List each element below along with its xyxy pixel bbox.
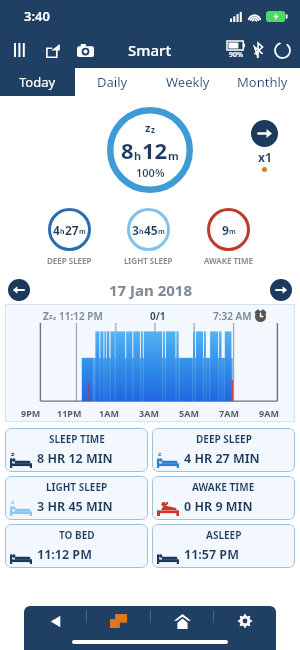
button[interactable]: Monthly: [225, 68, 300, 96]
staticText: Daily: [97, 73, 128, 91]
staticText: 11:12 PM: [37, 546, 92, 563]
staticText: 1AM: [99, 407, 119, 419]
button[interactable]: 4: [47, 208, 92, 266]
staticText: 27: [65, 222, 79, 238]
staticText: h: [134, 148, 142, 163]
staticText: z: [145, 120, 151, 135]
staticText: 9: [222, 222, 229, 238]
staticText: DEEP SLEEP: [47, 255, 92, 266]
staticText: m: [79, 227, 86, 237]
staticText: z: [49, 312, 53, 322]
button[interactable]: Today: [0, 68, 75, 96]
staticText: Z: [43, 309, 49, 323]
staticText: 3: [132, 222, 139, 238]
staticText: 12: [142, 135, 168, 165]
staticText: 4 HR 27 MIN: [184, 450, 260, 467]
staticText: Monthly: [237, 73, 288, 91]
button[interactable]: Back: [38, 610, 72, 632]
staticText: h: [139, 227, 144, 237]
staticText: 100%: [136, 165, 165, 180]
button[interactable]: AWAKE TIME: [152, 476, 295, 520]
staticText: 9AM: [259, 407, 279, 419]
button[interactable]: TO BED: [5, 524, 148, 568]
staticText: AWAKE TIME: [192, 480, 255, 494]
staticText: 3 HR 45 MIN: [37, 498, 113, 515]
staticText: 0 HR 9 MIN: [184, 498, 253, 515]
staticText: LIGHT SLEEP: [124, 255, 173, 266]
button[interactable]: Daily: [75, 68, 150, 96]
button[interactable]: Next day: [270, 279, 292, 301]
staticText: 7AM: [219, 407, 239, 419]
staticText: 8: [121, 135, 134, 165]
button[interactable]: SLEEP TIME: [5, 428, 148, 472]
staticText: LIGHT SLEEP: [46, 480, 108, 494]
button[interactable]: Menu: [8, 37, 34, 63]
staticText: 3AM: [139, 407, 159, 419]
staticText: ASLEEP: [206, 528, 242, 542]
button[interactable]: Next: [251, 120, 278, 147]
staticText: 90%: [229, 50, 244, 60]
button[interactable]: 9: [204, 208, 253, 266]
staticText: 45: [144, 222, 158, 238]
staticText: z: [151, 124, 155, 135]
staticText: TO BED: [59, 528, 95, 542]
staticText: DEEP SLEEP: [196, 432, 252, 446]
staticText: m: [229, 227, 236, 237]
staticText: 4: [53, 222, 60, 238]
staticText: Smart: [128, 40, 172, 60]
button[interactable]: Recents: [101, 610, 135, 632]
button[interactable]: ASLEEP: [152, 524, 295, 568]
button[interactable]: Home: [165, 610, 199, 632]
button[interactable]: Previous day: [8, 279, 30, 301]
staticText: m: [158, 227, 165, 237]
staticText: 11:12 PM: [59, 309, 103, 323]
button[interactable]: LIGHT SLEEP: [5, 476, 148, 520]
button[interactable]: z: [107, 107, 193, 193]
staticText: SLEEP TIME: [49, 432, 105, 446]
staticText: 3:40: [24, 7, 50, 25]
staticText: Today: [19, 73, 56, 91]
button[interactable]: 3: [124, 208, 173, 266]
staticText: 11:57 PM: [184, 546, 239, 563]
staticText: 17 Jan 2018: [109, 280, 192, 300]
staticText: h: [60, 227, 65, 237]
staticText: AWAKE TIME: [204, 255, 253, 266]
button[interactable]: Settings: [228, 610, 262, 632]
staticText: Weekly: [166, 73, 210, 91]
staticText: m: [168, 148, 179, 163]
staticText: 8 HR 12 MIN: [37, 450, 113, 467]
staticText: 11PM: [57, 407, 82, 419]
staticText: 5AM: [179, 407, 199, 419]
button[interactable]: Camera: [72, 37, 98, 63]
staticText: x1: [258, 149, 272, 165]
staticText: 7:32 AM: [213, 309, 252, 323]
staticText: z: [53, 314, 56, 322]
button[interactable]: Weekly: [150, 68, 225, 96]
staticText: 0/1: [150, 309, 166, 323]
staticText: 9PM: [21, 407, 41, 419]
button[interactable]: Refresh: [272, 40, 292, 60]
button[interactable]: DEEP SLEEP: [152, 428, 295, 472]
button[interactable]: Share: [40, 37, 66, 63]
